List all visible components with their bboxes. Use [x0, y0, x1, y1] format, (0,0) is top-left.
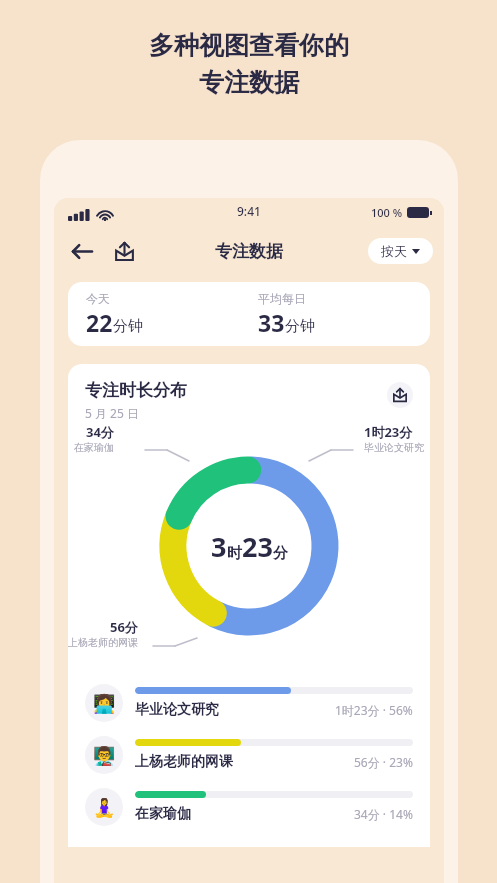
button[interactable]: 今天 [68, 282, 430, 346]
staticText: 100 % [371, 205, 403, 220]
button[interactable]: 🧘‍♀️ [68, 781, 430, 833]
staticText: 在家瑜伽 [135, 805, 191, 823]
staticText: 毕业论文研究 [135, 701, 219, 719]
button[interactable]: 按天 [368, 238, 433, 264]
staticText: 时 [227, 544, 242, 563]
button[interactable]: 👨‍🏫 [68, 729, 430, 781]
staticText: 毕业论文研究 [364, 441, 424, 454]
staticText: 按天 [381, 243, 407, 259]
staticText: 上杨老师的网课 [135, 753, 233, 771]
staticText: 56分 [110, 618, 138, 636]
button[interactable]: Share chart [387, 382, 413, 408]
staticText: 专注数据 [215, 241, 283, 262]
staticText: 多种视图查看你的 [149, 30, 349, 61]
staticText: 👩‍💻 [93, 693, 116, 714]
staticText: 1时23分 · 56% [335, 702, 413, 718]
staticText: 平均每日 [258, 291, 306, 306]
staticText: 今天 [86, 291, 110, 306]
staticText: 上杨老师的网课 [68, 636, 138, 649]
staticText: 3 [211, 528, 227, 565]
staticText: 🧘‍♀️ [93, 797, 116, 818]
staticText: 5 月 25 日 [85, 405, 139, 421]
button[interactable]: 👩‍💻 [68, 677, 430, 729]
staticText: 23 [242, 528, 273, 565]
staticText: 分 [273, 544, 288, 563]
staticText: 在家瑜伽 [74, 441, 114, 454]
staticText: 33 [258, 307, 285, 338]
staticText: 22 [86, 307, 113, 338]
staticText: 34分 [86, 423, 114, 441]
staticText: 9:41 [237, 203, 261, 219]
staticText: 34分 · 14% [354, 806, 413, 822]
staticText: 👨‍🏫 [93, 745, 116, 766]
staticText: 1时23分 [364, 423, 413, 441]
button[interactable]: Back [64, 233, 100, 269]
staticText: 56分 · 23% [354, 754, 413, 770]
staticText: 专注时长分布 [85, 380, 187, 401]
staticText: 分钟 [113, 317, 143, 336]
staticText: 分钟 [285, 317, 315, 336]
staticText: 专注数据 [199, 67, 299, 98]
button[interactable]: Share [106, 233, 142, 269]
